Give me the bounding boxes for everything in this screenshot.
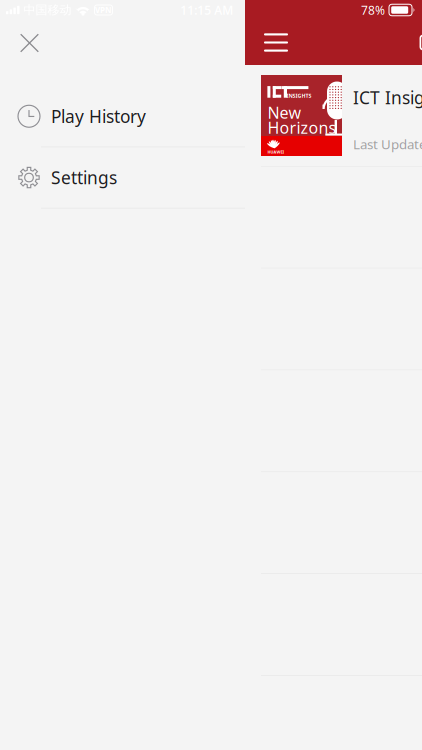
staticText: VPN (95, 5, 112, 15)
staticText: ICT Insights New Horizons (353, 86, 422, 109)
staticText: Play History (51, 105, 146, 128)
staticText: INSIGHTS (287, 92, 312, 99)
button[interactable]: Close (7, 21, 51, 65)
staticText: 11:15 AM (180, 2, 233, 18)
staticText: 78% (361, 2, 385, 18)
staticText: Settings (51, 166, 117, 189)
staticText: HUAWEI (267, 149, 284, 155)
staticText: Horizons (267, 117, 336, 138)
button[interactable]: Settings (0, 147, 245, 209)
button[interactable]: INSIGHTS (245, 65, 422, 167)
button[interactable]: Menu (254, 20, 298, 65)
button[interactable]: Play History (0, 86, 245, 147)
staticText: Last Update: 2020-01-09 (353, 135, 422, 153)
staticText: New (267, 102, 301, 123)
staticText: 中国移动 (23, 3, 71, 17)
button[interactable]: Search (405, 20, 422, 65)
